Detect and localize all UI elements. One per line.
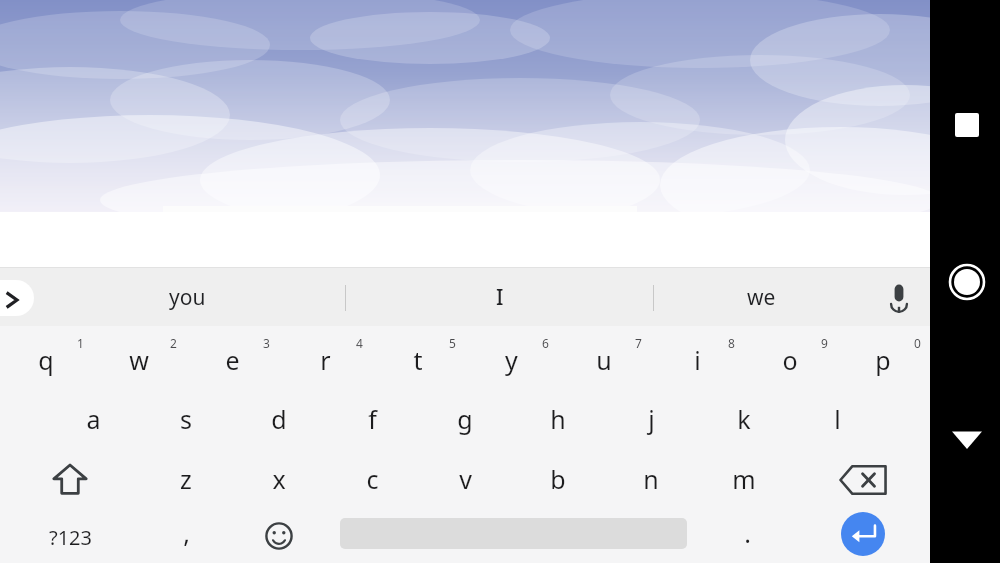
button[interactable]: Recent apps <box>943 101 991 149</box>
staticText: z <box>180 462 192 496</box>
button[interactable]: i <box>651 337 744 395</box>
staticText: h <box>550 402 566 436</box>
staticText: 7 <box>635 335 642 351</box>
button[interactable]: n <box>604 450 697 508</box>
staticText: we <box>747 283 776 312</box>
staticText: you <box>169 283 206 312</box>
staticText: 8 <box>728 335 735 351</box>
staticText: t <box>413 343 423 377</box>
button[interactable]: Voice input <box>872 272 924 324</box>
button[interactable]: Backspace <box>817 450 910 508</box>
staticText: p <box>875 343 891 377</box>
button[interactable]: g <box>418 390 511 448</box>
button[interactable]: Emoji <box>240 508 320 563</box>
staticText: m <box>732 462 756 496</box>
staticText: 4 <box>356 335 363 351</box>
staticText: y <box>505 343 518 377</box>
staticText: 9 <box>821 335 828 351</box>
button[interactable]: s <box>139 390 232 448</box>
staticText: j <box>648 402 655 436</box>
button[interactable]: q <box>0 337 93 395</box>
staticText: s <box>180 402 192 436</box>
staticText: w <box>129 343 149 377</box>
staticText: n <box>643 462 659 496</box>
staticText: ?123 <box>49 524 92 551</box>
staticText: c <box>366 462 379 496</box>
staticText: , <box>183 516 190 550</box>
staticText: I <box>496 283 504 312</box>
button[interactable]: Enter <box>841 512 885 556</box>
button[interactable]: I <box>346 268 653 326</box>
button[interactable]: k <box>697 390 790 448</box>
button[interactable]: h <box>511 390 604 448</box>
button[interactable]: o <box>744 337 837 395</box>
staticText: d <box>271 402 287 436</box>
button[interactable]: u <box>558 337 651 395</box>
staticText: v <box>459 462 472 496</box>
staticText: x <box>272 462 286 496</box>
button[interactable]: z <box>139 450 232 508</box>
staticText: 1 <box>77 335 84 351</box>
staticText: r <box>320 343 331 377</box>
staticText: . <box>744 516 751 550</box>
staticText: q <box>38 343 54 377</box>
button[interactable]: d <box>232 390 325 448</box>
button[interactable]: c <box>325 450 418 508</box>
button[interactable]: v <box>418 450 511 508</box>
staticText: 0 <box>914 335 921 351</box>
staticText: g <box>457 402 473 436</box>
button[interactable]: ?123 <box>24 508 117 563</box>
staticText: e <box>225 343 240 377</box>
button[interactable]: r <box>279 337 372 395</box>
staticText: f <box>368 402 377 436</box>
button[interactable]: Period <box>707 508 787 563</box>
staticText: 5 <box>449 335 456 351</box>
button[interactable]: Hide keyboard <box>943 415 991 463</box>
button[interactable]: w <box>93 337 186 395</box>
button[interactable]: l <box>790 390 883 448</box>
button[interactable]: a <box>46 390 139 448</box>
staticText: 3 <box>263 335 270 351</box>
button[interactable]: Home <box>943 258 991 306</box>
button[interactable]: m <box>697 450 790 508</box>
button[interactable]: e <box>186 337 279 395</box>
staticText: b <box>550 462 566 496</box>
staticText: l <box>834 402 841 436</box>
button[interactable]: Shift <box>24 450 117 508</box>
staticText: i <box>694 343 701 377</box>
button[interactable]: t <box>372 337 465 395</box>
staticText: o <box>782 343 798 377</box>
staticText: u <box>596 343 612 377</box>
button[interactable]: Comma <box>146 508 226 563</box>
button[interactable]: f <box>325 390 418 448</box>
staticText: k <box>737 402 751 436</box>
button[interactable]: x <box>232 450 325 508</box>
button[interactable]: p <box>837 337 930 395</box>
button[interactable]: j <box>604 390 697 448</box>
button[interactable]: b <box>511 450 604 508</box>
button[interactable] <box>0 212 930 268</box>
button[interactable]: we <box>654 268 869 326</box>
button[interactable]: Show more suggestions <box>0 280 34 316</box>
button[interactable]: y <box>465 337 558 395</box>
staticText: 2 <box>170 335 177 351</box>
staticText: 6 <box>542 335 549 351</box>
staticText: a <box>86 402 101 436</box>
button[interactable]: you <box>30 268 345 326</box>
